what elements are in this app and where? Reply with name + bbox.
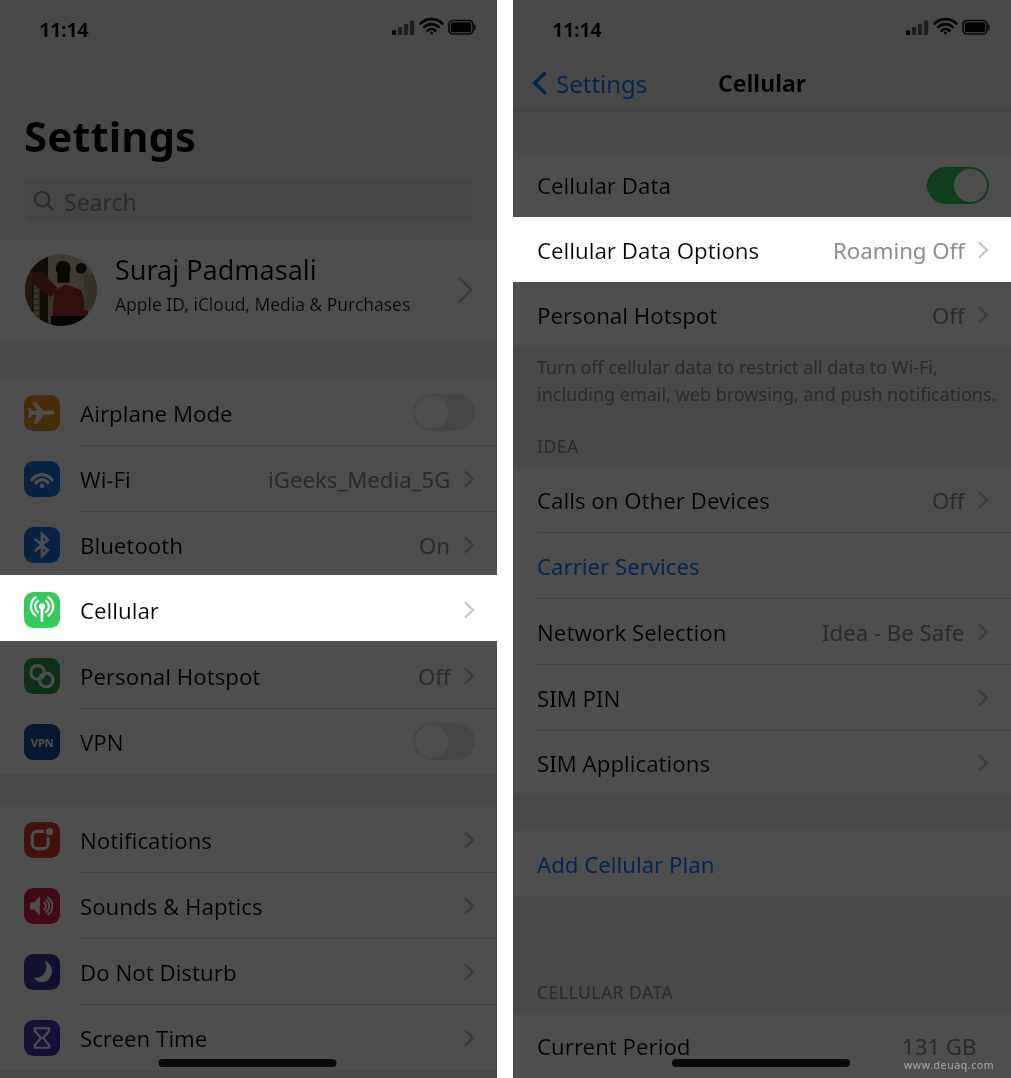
staticText: Personal Hotspot	[537, 300, 718, 330]
button[interactable]: Cellular Data	[513, 153, 1011, 217]
button[interactable]: Add Cellular Plan	[513, 831, 1011, 896]
staticText: Settings	[556, 67, 648, 100]
staticText: VPN	[31, 735, 54, 750]
button[interactable]: Carrier Services	[513, 533, 1011, 598]
button[interactable]: Switch off	[413, 723, 475, 760]
staticText: Network Selection	[537, 617, 727, 647]
staticText: Turn off cellular data to restrict all d…	[537, 355, 997, 406]
staticText: Off	[418, 661, 451, 691]
staticText: IDEA	[537, 434, 579, 458]
staticText: Apple ID, iCloud, Media & Purchases	[115, 292, 411, 316]
staticText: Roaming Off	[833, 235, 965, 265]
button[interactable]: Notifications	[0, 807, 497, 872]
staticText: 11:14	[39, 16, 89, 43]
staticText: www.deuaq.com	[904, 1058, 995, 1072]
staticText: SIM Applications	[537, 748, 711, 778]
staticText: 131 GB	[902, 1031, 977, 1061]
button[interactable]: Cellular Data Options	[513, 217, 1011, 282]
button[interactable]: Network Selection	[513, 599, 1011, 664]
staticText: Wi-Fi	[80, 464, 131, 494]
staticText: CELLULAR DATA	[537, 980, 674, 1004]
staticText: Personal Hotspot	[80, 661, 261, 691]
staticText: On	[419, 530, 451, 560]
button[interactable]: Switch off	[413, 394, 475, 431]
button[interactable]: Suraj Padmasali	[0, 240, 497, 340]
staticText: Airplane Mode	[80, 398, 233, 428]
staticText: Cellular	[718, 67, 807, 98]
button[interactable]: Search settings	[24, 180, 473, 222]
button[interactable]: Bluetooth	[0, 512, 497, 577]
staticText: Idea - Be Safe	[822, 617, 965, 647]
staticText: Carrier Services	[537, 551, 700, 581]
button[interactable]: Sounds & Haptics	[0, 873, 497, 938]
staticText: Current Period	[537, 1031, 691, 1061]
staticText: iGeeks_Media_5G	[268, 464, 451, 494]
staticText: Suraj Padmasali	[115, 251, 317, 288]
button[interactable]: Personal Hotspot	[513, 282, 1011, 347]
staticText: Bluetooth	[80, 530, 183, 560]
button[interactable]: Back to Settings	[513, 66, 656, 100]
button[interactable]: Do Not Disturb	[0, 939, 497, 1004]
button[interactable]: Personal Hotspot	[0, 643, 497, 708]
staticText: Off	[932, 300, 965, 330]
button[interactable]: Screen Time	[0, 1005, 497, 1070]
staticText: Cellular Data Options	[537, 235, 760, 265]
staticText: Calls on Other Devices	[537, 485, 770, 515]
staticText: 11:14	[552, 16, 602, 43]
button[interactable]: Switch on	[927, 167, 989, 204]
button[interactable]: SIM Applications	[513, 731, 1011, 795]
button[interactable]: Current Period	[513, 1013, 1011, 1078]
staticText: SIM PIN	[537, 683, 621, 713]
staticText: Sounds & Haptics	[80, 891, 263, 921]
button[interactable]: Airplane Mode	[0, 380, 497, 445]
staticText: Screen Time	[80, 1023, 208, 1053]
staticText: Cellular Data	[537, 170, 671, 200]
staticText: Do Not Disturb	[80, 957, 237, 987]
button[interactable]: Wi-Fi	[0, 446, 497, 511]
staticText: Add Cellular Plan	[537, 849, 715, 879]
button[interactable]: VPN	[0, 709, 497, 774]
staticText: Cellular	[80, 595, 160, 625]
button[interactable]: SIM PIN	[513, 665, 1011, 730]
button[interactable]: Calls on Other Devices	[513, 467, 1011, 532]
button[interactable]: Cellular	[0, 577, 497, 643]
staticText: Settings	[24, 107, 197, 164]
staticText: Off	[932, 485, 965, 515]
staticText: Search	[64, 186, 137, 217]
staticText: VPN	[80, 727, 124, 757]
staticText: Notifications	[80, 825, 212, 855]
